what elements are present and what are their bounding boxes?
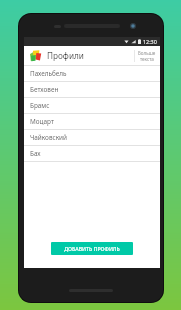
button[interactable]: Пахельбель — [24, 66, 160, 82]
staticText: Чайковский — [30, 133, 67, 142]
button[interactable]: Брамс — [24, 98, 160, 114]
staticText: Моцарт — [30, 117, 54, 126]
staticText: Бах — [30, 149, 41, 158]
staticText: 12:30 — [143, 38, 157, 45]
staticText: Брамс — [30, 101, 50, 110]
button[interactable]: Бетховен — [24, 82, 160, 98]
button[interactable]: Бах — [24, 146, 160, 162]
staticText: текста — [140, 56, 154, 62]
staticText: Больше — [138, 50, 156, 56]
button[interactable]: Чайковский — [24, 130, 160, 146]
staticText: Профили — [47, 50, 84, 61]
button[interactable]: ДОБАВИТЬ ПРОФИЛЬ — [51, 242, 133, 255]
staticText: Пахельбель — [30, 69, 67, 78]
staticText: ДОБАВИТЬ ПРОФИЛЬ — [64, 245, 120, 252]
staticText: Бетховен — [30, 85, 59, 94]
button[interactable]: Больше — [134, 46, 160, 65]
button[interactable]: Моцарт — [24, 114, 160, 130]
